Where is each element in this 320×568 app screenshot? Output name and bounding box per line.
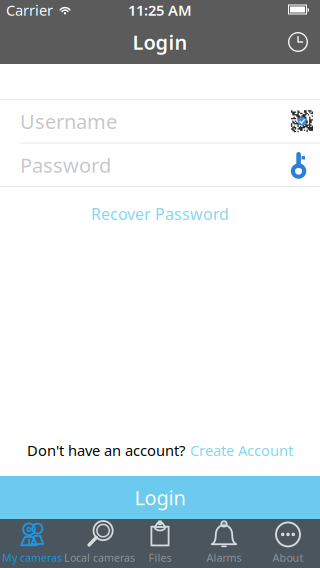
- button[interactable]: About: [256, 519, 320, 568]
- button[interactable]: Recover Password: [0, 187, 320, 234]
- staticText: About: [272, 550, 303, 565]
- staticText: Files: [148, 550, 171, 565]
- button[interactable]: Alarms: [192, 519, 256, 568]
- button[interactable]: Create Account: [190, 440, 293, 460]
- staticText: Username: [20, 108, 117, 134]
- staticText: Create Account: [190, 440, 293, 460]
- staticText: Alarms: [206, 550, 241, 565]
- staticText: Recover Password: [91, 203, 229, 224]
- button[interactable]: Show password: [283, 151, 307, 179]
- staticText: Login: [134, 484, 185, 511]
- staticText: Don't have an account?: [27, 440, 185, 460]
- button[interactable]: Local cameras: [64, 519, 128, 568]
- button[interactable]: Login: [0, 476, 320, 519]
- staticText: Carrier: [6, 0, 53, 20]
- staticText: Local cameras: [64, 550, 135, 565]
- staticText: 11:25 AM: [128, 0, 192, 20]
- button[interactable]: History: [276, 21, 320, 63]
- staticText: Login: [132, 29, 187, 55]
- button[interactable]: My cameras: [0, 519, 64, 568]
- button[interactable]: Scan QR code: [283, 110, 313, 132]
- staticText: My cameras: [2, 550, 62, 565]
- staticText: Password: [20, 152, 111, 178]
- button[interactable]: Files: [128, 519, 192, 568]
